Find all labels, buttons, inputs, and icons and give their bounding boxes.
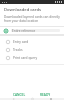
button[interactable]: Entire reference	[0, 27, 64, 34]
staticText: Tracks	[13, 48, 23, 52]
staticText: Print card query	[13, 56, 38, 60]
button[interactable]: Print card query	[0, 54, 64, 62]
button[interactable]: Entry card	[0, 38, 64, 46]
staticText: READY	[40, 93, 51, 97]
staticText: Entry card	[13, 40, 29, 44]
button[interactable]: Recents	[46, 98, 55, 100]
button[interactable]: READY	[38, 92, 53, 98]
staticText: Downloaded cards	[4, 7, 42, 13]
staticText: Downloaded layered cards can directly fr…	[4, 15, 60, 23]
button[interactable]: Tracks	[0, 46, 64, 54]
button[interactable]: Back	[9, 98, 18, 100]
staticText: CANCEL	[13, 93, 26, 97]
staticText: Entire reference	[12, 29, 36, 32]
button[interactable]: CANCEL	[11, 92, 28, 98]
button[interactable]: Home	[28, 98, 37, 100]
